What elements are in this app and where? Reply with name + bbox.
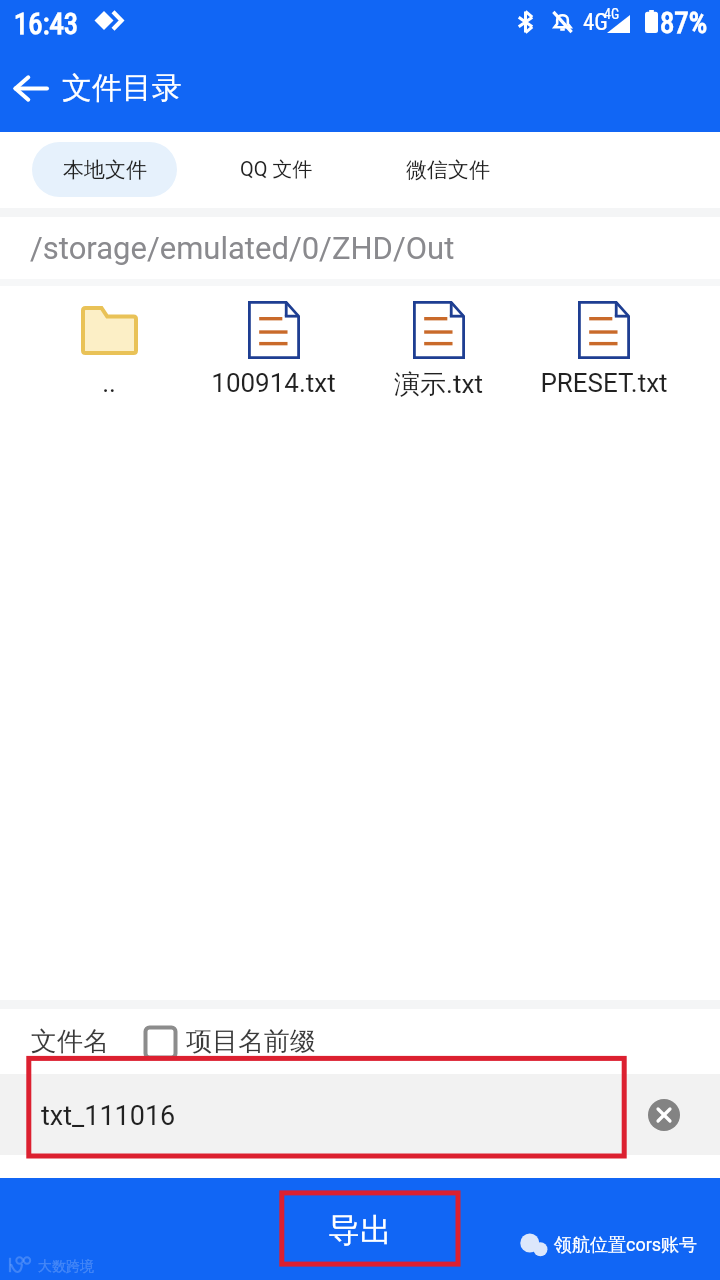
button[interactable]: QQ 文件 bbox=[206, 142, 346, 197]
button[interactable]: txt_111016 bbox=[0, 1074, 720, 1155]
staticText: 100914.txt bbox=[211, 368, 336, 398]
button[interactable]: Project name prefix checkbox bbox=[143, 1025, 178, 1060]
button[interactable]: 导出 bbox=[279, 1189, 461, 1266]
staticText: 文件名 bbox=[31, 1025, 109, 1058]
staticText: 项目名前缀 bbox=[186, 1025, 316, 1058]
staticText: .. bbox=[102, 368, 116, 398]
staticText: 微信文件 bbox=[406, 157, 490, 183]
staticText: 大数跨境 bbox=[38, 1258, 94, 1276]
button[interactable]: 微信文件 bbox=[378, 142, 518, 197]
button[interactable]: 演示.txt bbox=[356, 301, 521, 401]
button[interactable]: 100914.txt bbox=[191, 301, 356, 398]
staticText: 导出 bbox=[328, 1210, 392, 1250]
staticText: QQ 文件 bbox=[240, 157, 313, 182]
staticText: 本地文件 bbox=[63, 157, 147, 183]
button[interactable]: 本地文件 bbox=[32, 142, 177, 197]
button[interactable]: 领航位置cors账号 bbox=[516, 1230, 702, 1261]
staticText: /storage/emulated/0/ZHD/Out bbox=[30, 230, 455, 266]
button[interactable]: Clear text bbox=[648, 1099, 680, 1131]
staticText: 87% bbox=[660, 6, 707, 40]
button[interactable]: Back bbox=[0, 50, 62, 126]
staticText: 16:43 bbox=[14, 7, 79, 41]
staticText: 领航位置cors账号 bbox=[554, 1234, 698, 1257]
staticText: txt_111016 bbox=[41, 1100, 176, 1132]
staticText: PRESET.txt bbox=[540, 368, 668, 398]
staticText: 4G bbox=[604, 6, 620, 22]
button[interactable]: PRESET.txt bbox=[521, 301, 686, 398]
button[interactable]: .. bbox=[26, 301, 191, 398]
staticText: 演示.txt bbox=[394, 368, 483, 401]
staticText: 文件目录 bbox=[62, 69, 182, 107]
staticText: 4G bbox=[583, 9, 608, 36]
